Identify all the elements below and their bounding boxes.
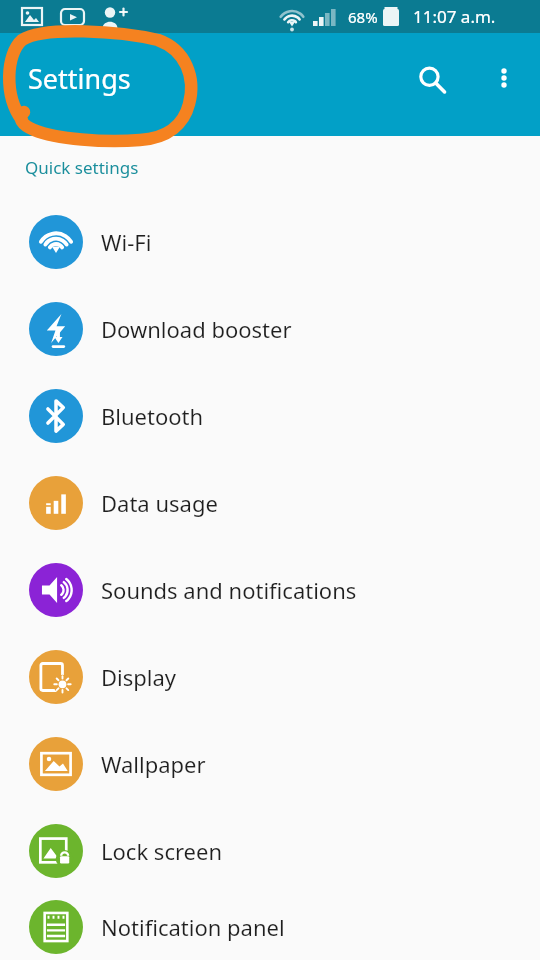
button[interactable]: Lock screen: [0, 807, 540, 894]
button[interactable]: Display: [0, 633, 540, 720]
staticText: 68%: [348, 7, 378, 27]
button[interactable]: Bluetooth: [0, 372, 540, 459]
staticText: Display: [101, 662, 177, 692]
staticText: Bluetooth: [101, 401, 204, 431]
staticText: Sounds and notifications: [101, 575, 357, 605]
staticText: Data usage: [101, 488, 218, 518]
staticText: Notification panel: [101, 912, 285, 942]
staticText: Quick settings: [25, 156, 139, 179]
button[interactable]: Search: [404, 52, 460, 108]
staticText: Wallpaper: [101, 749, 206, 779]
staticText: Wi-Fi: [101, 227, 152, 257]
staticText: 11:07 a.m.: [413, 5, 496, 28]
button[interactable]: Notification panel: [0, 894, 540, 960]
button[interactable]: Wi-Fi: [0, 198, 540, 285]
button[interactable]: Settings: [28, 60, 131, 97]
button[interactable]: Download booster: [0, 285, 540, 372]
button[interactable]: More options: [478, 52, 530, 104]
staticText: Download booster: [101, 314, 292, 344]
staticText: Lock screen: [101, 836, 223, 866]
button[interactable]: Data usage: [0, 459, 540, 546]
button[interactable]: Sounds and notifications: [0, 546, 540, 633]
button[interactable]: Wallpaper: [0, 720, 540, 807]
